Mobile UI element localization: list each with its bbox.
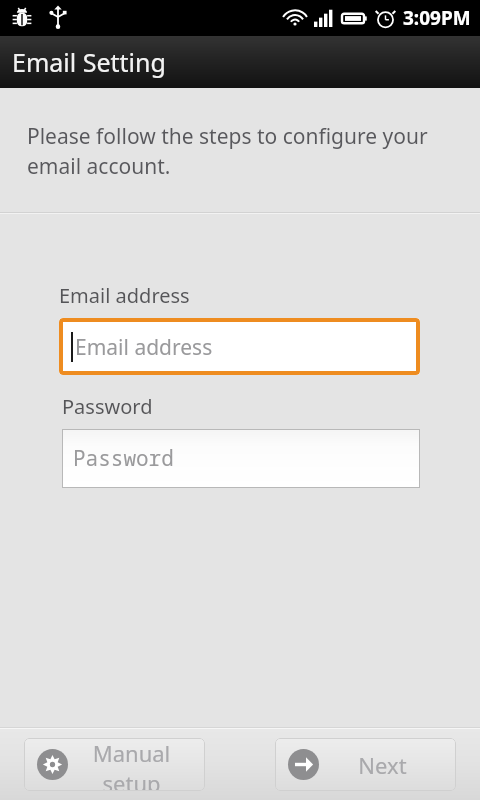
button[interactable]: Next [275,738,456,791]
staticText: Email address [75,333,213,362]
button[interactable]: Manual setup [24,738,205,791]
staticText: Email address [59,282,190,309]
staticText: Password [73,444,174,473]
staticText: 3:09PM [403,5,471,31]
button[interactable]: Password [62,429,420,488]
staticText: Next [319,750,446,780]
staticText: Email Setting [12,45,166,79]
staticText: Manual setup [68,738,195,791]
staticText: Password [62,393,153,420]
button[interactable]: Email address [59,318,420,375]
staticText: Please follow the steps to configure you… [27,122,440,180]
other: Next [288,749,319,780]
